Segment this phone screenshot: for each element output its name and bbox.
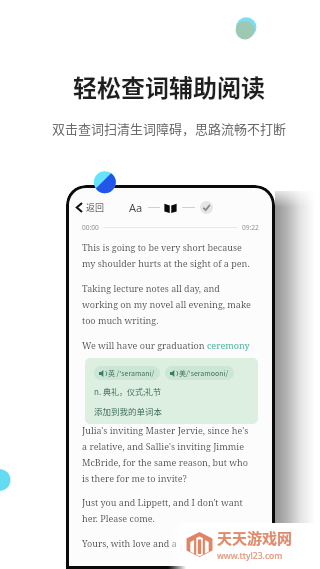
staticText: 返回 <box>86 201 105 214</box>
staticText: 天天游戏网 <box>217 527 293 549</box>
staticText: n. 典礼，仪式;礼节 <box>94 386 162 398</box>
button[interactable]: Finish reading <box>200 201 213 214</box>
staticText: Taking lecture notes all day, and workin… <box>82 282 255 326</box>
staticText: Julia's inviting Master Jervie, since he… <box>82 424 255 484</box>
staticText: Just you and Lippett, and I don't want h… <box>82 496 255 524</box>
other: Site logo <box>186 532 213 557</box>
staticText: www.ttyl23.com <box>217 550 283 562</box>
button[interactable]: 美/'seramooni/ <box>165 366 234 380</box>
button[interactable]: Back <box>73 199 107 216</box>
staticText: 轻松查词辅助阅读 <box>9 69 320 104</box>
staticText: 英 /'seramani/ <box>108 368 155 378</box>
button[interactable]: 英 /'seramani/ <box>94 366 160 380</box>
staticText: Yours, with love and a <box>82 537 177 549</box>
staticText: 09:22 <box>242 223 259 232</box>
staticText: 美/'seramooni/ <box>179 368 229 378</box>
staticText: 双击查词扫清生词障碍，思路流畅不打断 <box>9 119 320 138</box>
staticText: 00:00 <box>82 223 99 232</box>
button[interactable]: 添加到我的单词本 <box>94 405 163 417</box>
button[interactable]: Book mode <box>164 201 177 214</box>
staticText: We will have our graduation ceremony <box>82 339 250 351</box>
staticText: This is going to be very short because m… <box>82 241 255 269</box>
button[interactable]: Aa <box>128 199 144 216</box>
